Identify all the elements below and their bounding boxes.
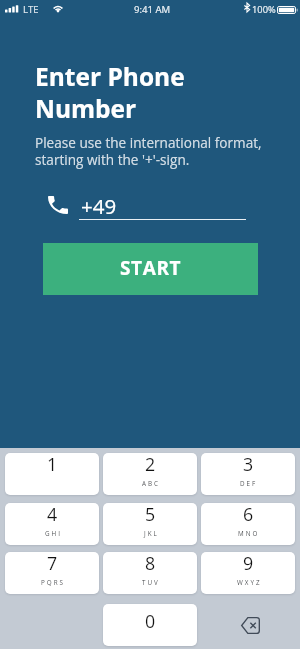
staticText: 5 (145, 503, 156, 526)
button[interactable]: 3 (201, 453, 295, 495)
staticText: WXYZ (237, 578, 262, 587)
staticText: ABC (142, 479, 161, 488)
button[interactable]: 5 (103, 503, 197, 545)
button[interactable]: 1 (5, 453, 99, 495)
button[interactable]: 7 (5, 552, 99, 594)
staticText: 9:41 AM (134, 3, 171, 16)
staticText: DEF (240, 479, 258, 488)
staticText: 1 (47, 453, 58, 476)
button[interactable]: 4 (5, 503, 99, 545)
staticText: 0 (145, 609, 156, 633)
staticText: 6 (243, 503, 254, 526)
staticText: 2 (145, 453, 156, 476)
staticText: 3 (243, 453, 254, 476)
staticText: 9 (243, 552, 254, 575)
button[interactable]: 0 (103, 604, 197, 646)
staticText: Please use the international format, sta… (35, 133, 262, 169)
staticText: 8 (145, 552, 156, 575)
staticText: MNO (238, 529, 260, 538)
staticText: 7 (47, 552, 58, 575)
staticText: Enter Phone Number (35, 60, 185, 125)
button[interactable]: START (43, 243, 258, 295)
button[interactable]: 9 (201, 552, 295, 594)
button[interactable]: 2 (103, 453, 197, 495)
staticText: TUV (142, 578, 160, 587)
staticText: LTE (23, 3, 39, 16)
staticText: +49 (81, 192, 117, 220)
button[interactable]: 6 (201, 503, 295, 545)
staticText: JKL (144, 529, 159, 538)
button[interactable]: Delete (201, 604, 295, 646)
staticText: 100% (252, 3, 276, 16)
staticText: GHI (45, 529, 62, 538)
button[interactable]: 8 (103, 552, 197, 594)
staticText: PQRS (41, 578, 66, 587)
staticText: 4 (47, 503, 58, 526)
staticText: START (120, 255, 182, 281)
